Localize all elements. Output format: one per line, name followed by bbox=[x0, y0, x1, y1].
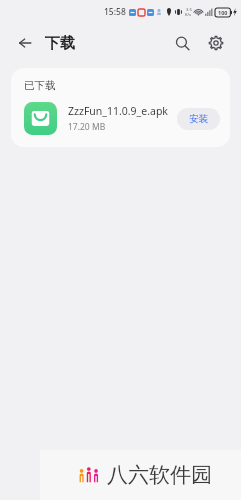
staticText: 已下载 bbox=[24, 79, 56, 92]
button[interactable]: 安装 bbox=[177, 108, 220, 130]
staticText: 下载 bbox=[45, 34, 75, 53]
button[interactable]: Settings bbox=[203, 30, 229, 56]
button[interactable]: Search bbox=[169, 30, 195, 56]
button[interactable]: 已下载 bbox=[11, 68, 230, 147]
staticText: 17.20 MB bbox=[68, 121, 106, 133]
button[interactable]: Back bbox=[13, 31, 37, 55]
staticText: K/s bbox=[185, 12, 192, 17]
staticText: 安装 bbox=[189, 113, 208, 125]
staticText: 八六软件园 bbox=[107, 462, 212, 488]
staticText: 15:58 bbox=[104, 6, 126, 18]
staticText: 3.5 bbox=[186, 7, 192, 12]
staticText: 100 bbox=[218, 9, 228, 16]
staticText: ZzzFun_11.0.9_e.apk bbox=[68, 104, 168, 118]
